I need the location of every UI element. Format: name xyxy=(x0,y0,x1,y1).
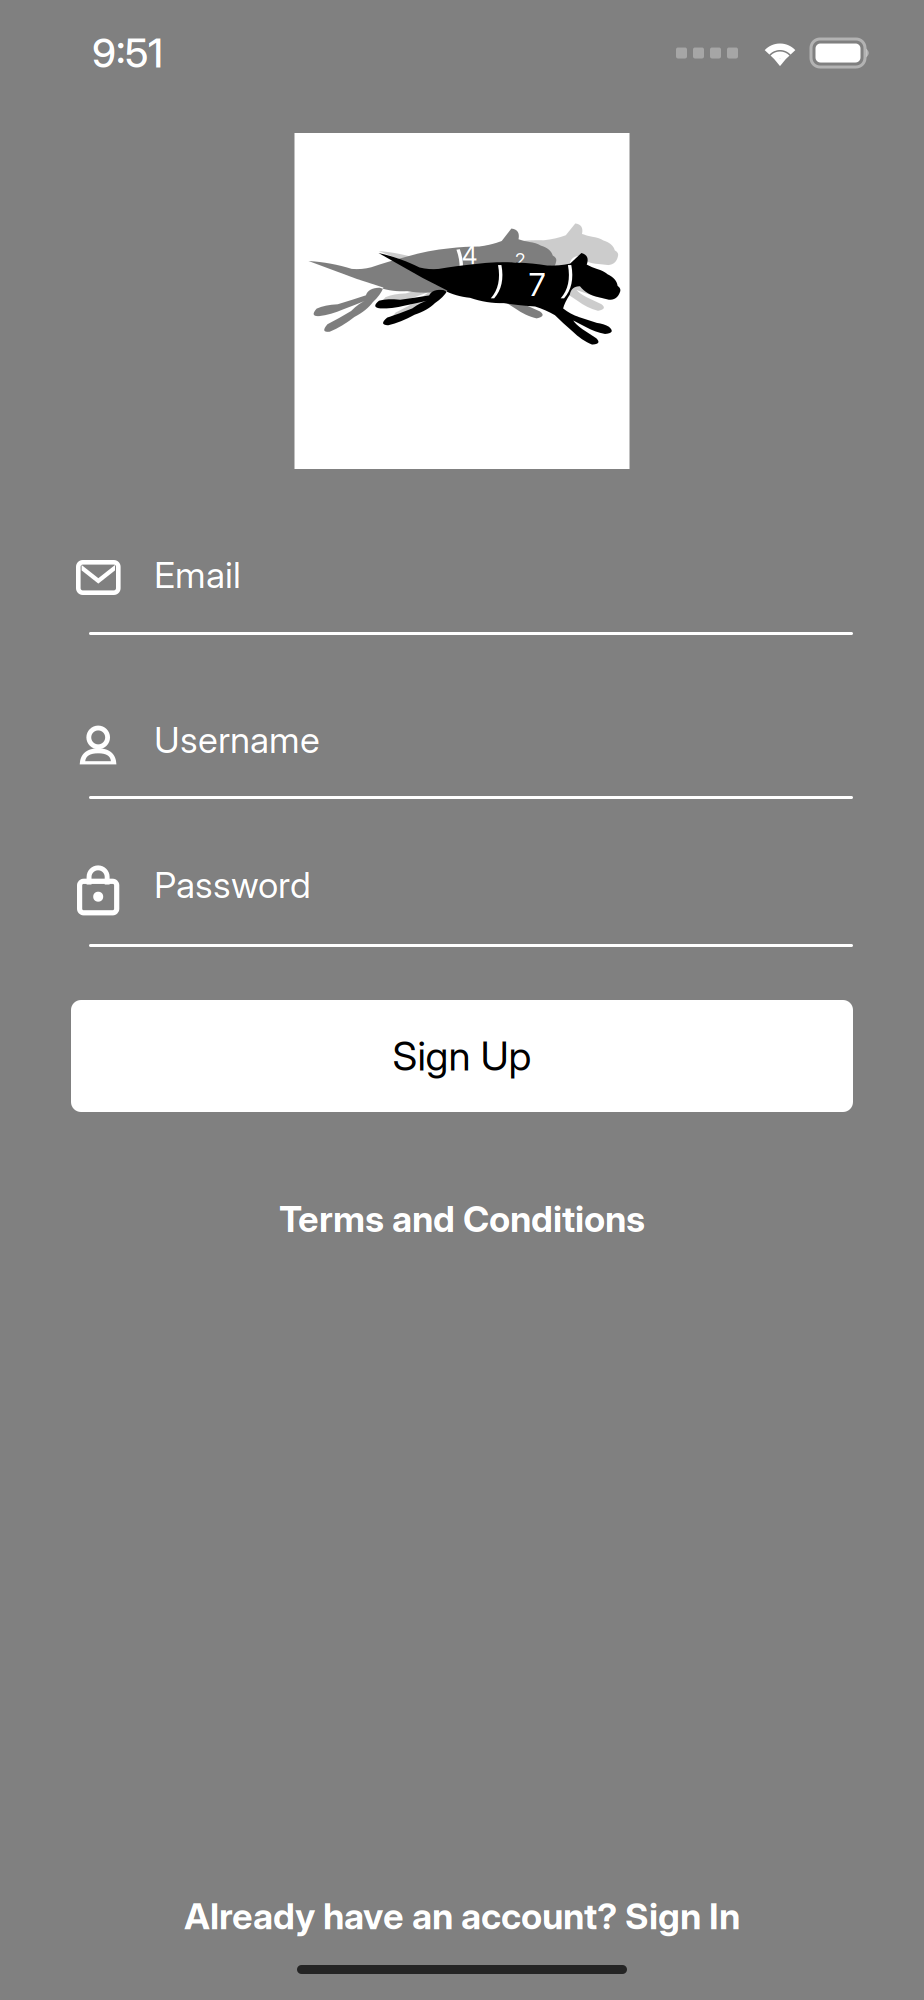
staticText: 7 xyxy=(528,265,545,304)
button[interactable]: Username xyxy=(76,715,853,799)
staticText: Already have an account? Sign In xyxy=(184,1894,740,1938)
staticText: Email xyxy=(154,553,241,597)
staticText: Username xyxy=(154,718,320,762)
staticText: 9:51 xyxy=(92,29,163,77)
staticText: Password xyxy=(154,863,311,907)
staticText: 2 xyxy=(514,248,525,271)
button[interactable]: Sign Up xyxy=(71,1000,853,1112)
button[interactable]: Terms and Conditions xyxy=(279,1197,645,1241)
staticText: Terms and Conditions xyxy=(279,1197,645,1241)
button[interactable]: Already have an account? Sign In xyxy=(184,1894,740,1938)
button[interactable]: Email xyxy=(76,550,853,635)
staticText: Sign Up xyxy=(392,1032,531,1080)
button[interactable]: Password xyxy=(76,860,853,947)
staticText: 4 xyxy=(461,240,477,271)
